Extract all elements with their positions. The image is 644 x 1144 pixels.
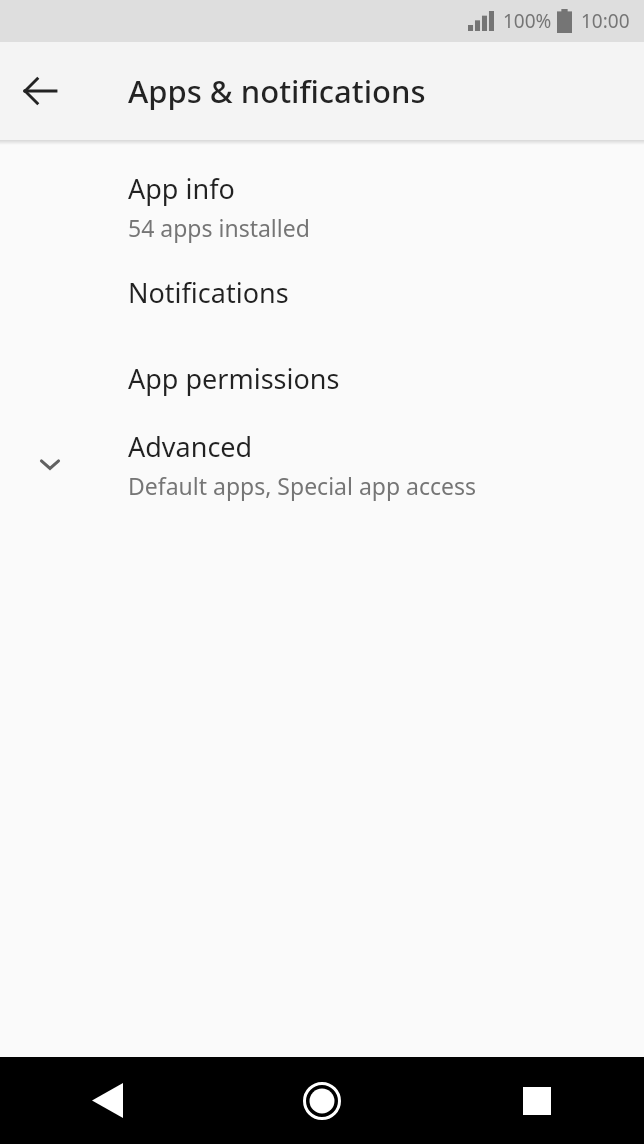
button[interactable]: Back [0, 1057, 214, 1144]
staticText: App info [128, 170, 235, 207]
button[interactable]: Recent apps [429, 1057, 644, 1144]
staticText: 100% [503, 8, 552, 34]
button[interactable]: Advanced [0, 421, 644, 507]
staticText: 54 apps installed [128, 212, 310, 243]
staticText: 10:00 [581, 8, 630, 34]
button[interactable]: Notifications [0, 249, 644, 335]
button[interactable]: Back [12, 63, 68, 119]
staticText: Advanced [128, 428, 253, 465]
staticText: Default apps, Special app access [128, 470, 477, 501]
button[interactable]: Home [214, 1057, 429, 1144]
staticText: Apps & notifications [128, 70, 426, 112]
button[interactable]: App info [0, 163, 644, 249]
staticText: App permissions [128, 360, 340, 397]
button[interactable]: App permissions [0, 335, 644, 421]
staticText: Notifications [128, 274, 289, 311]
